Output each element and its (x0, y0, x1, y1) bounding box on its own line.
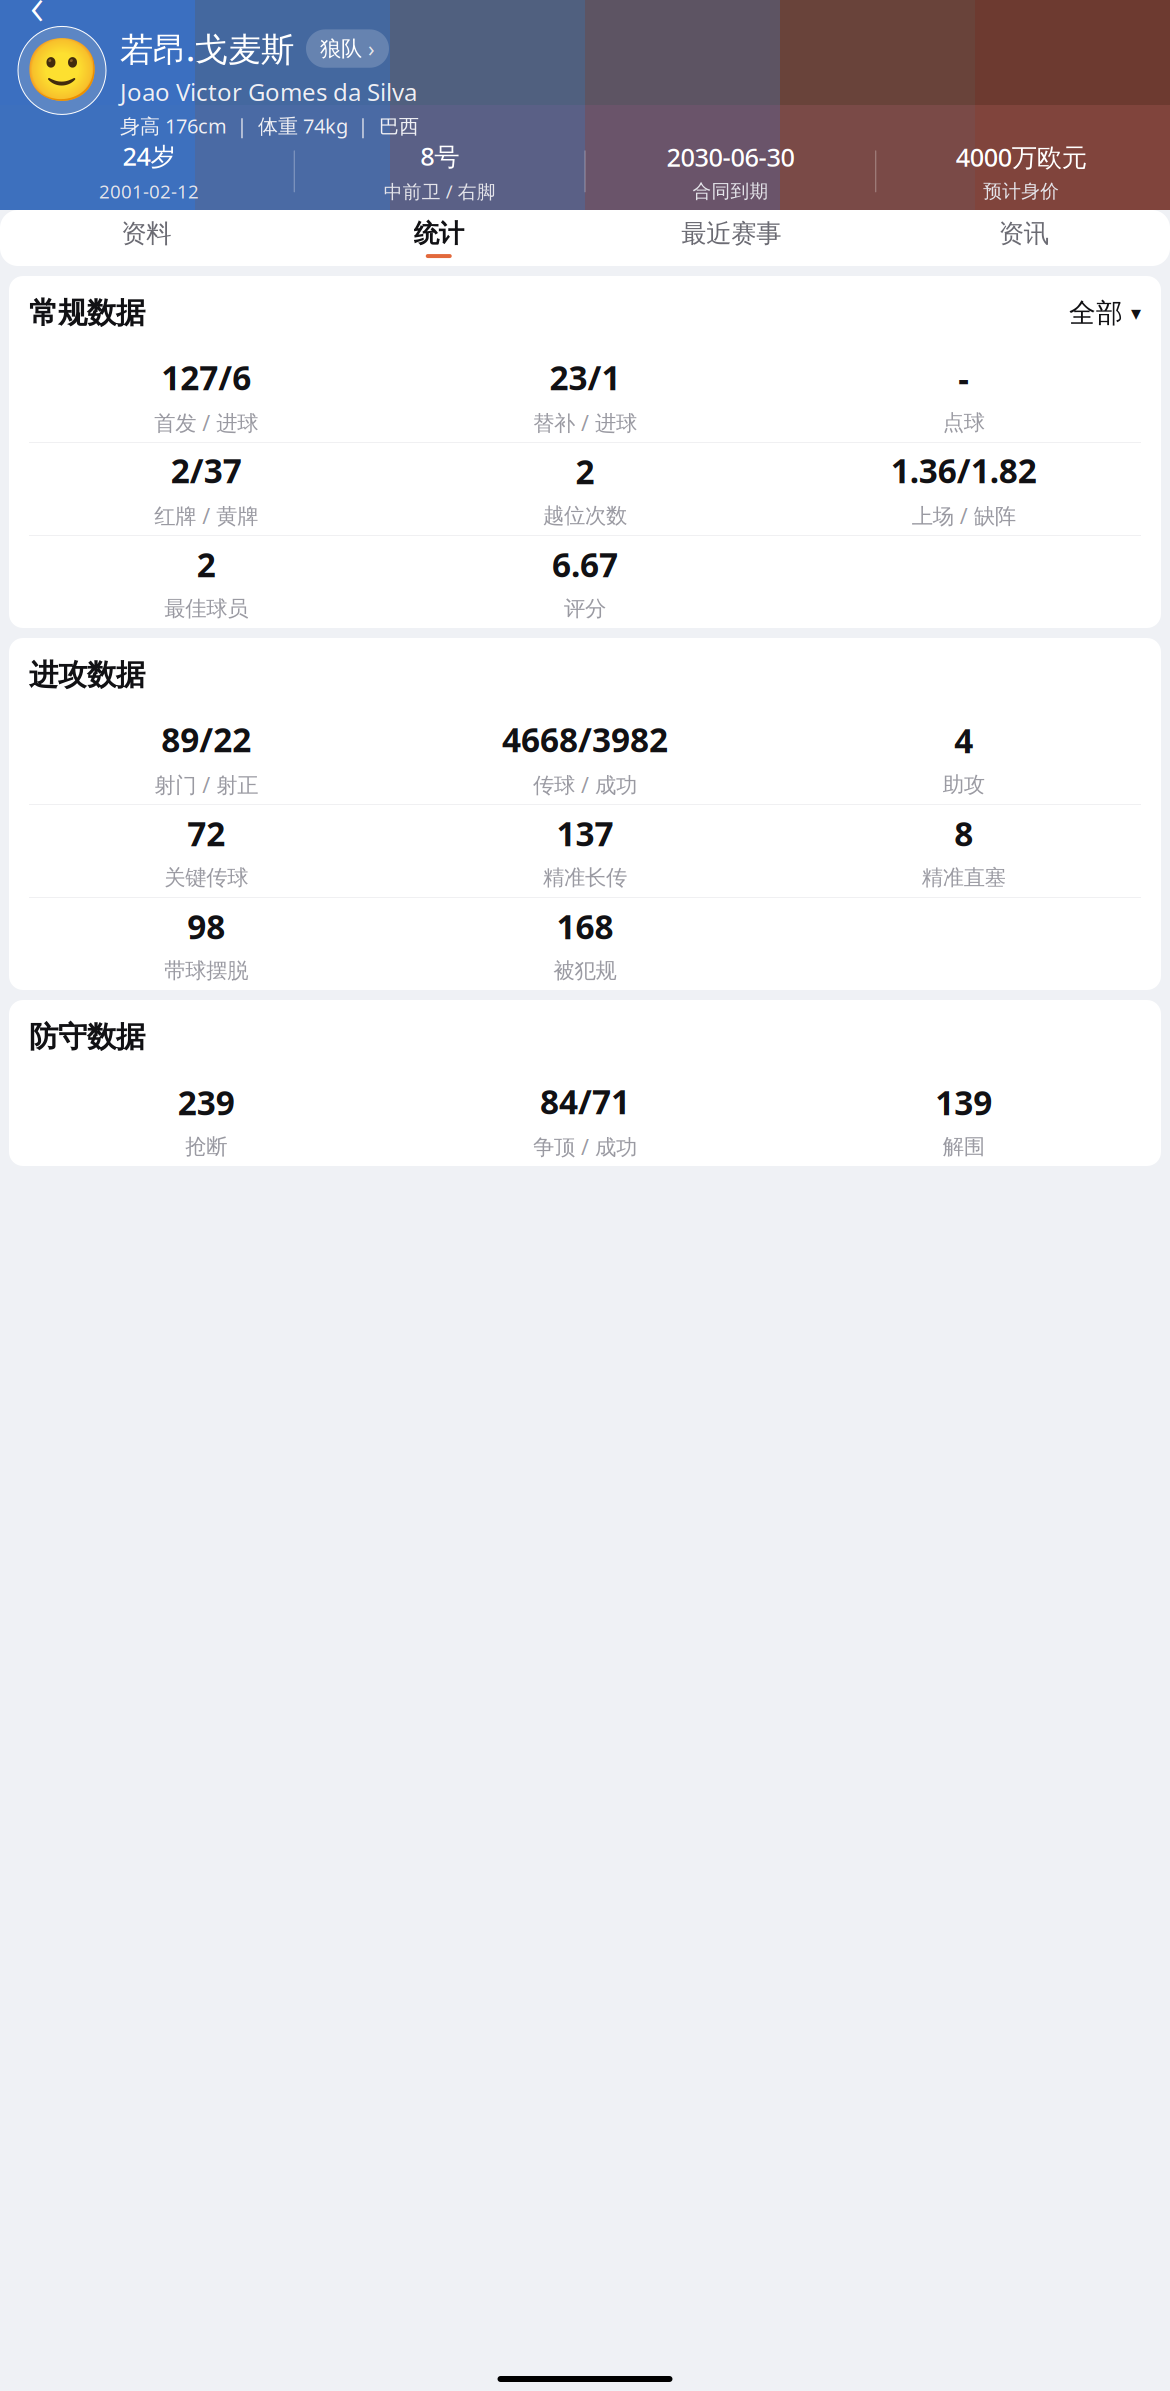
staticText: 统计 (414, 218, 464, 249)
staticText: 1.36/1.82 (891, 448, 1037, 492)
staticText: - (958, 356, 969, 401)
staticText: 98 (187, 904, 225, 949)
staticText: 最近赛事 (681, 218, 781, 249)
staticText: 中前卫 / 右脚 (384, 179, 496, 204)
staticText: 带球摆脱 (164, 957, 248, 984)
staticText: 点球 (943, 409, 985, 436)
staticText: 239 (178, 1080, 235, 1125)
staticText: 127/6 (161, 355, 251, 399)
staticText: 2001-02-12 (99, 179, 199, 204)
staticText: 全部 (1069, 297, 1123, 329)
staticText: 4668/3982 (502, 717, 668, 761)
staticText: 84/71 (540, 1079, 630, 1123)
button[interactable]: 统计 (292, 210, 585, 266)
staticText: 越位次数 (543, 502, 627, 529)
staticText: 身高 176cm ｜ 体重 74kg ｜ 巴西 (120, 113, 419, 139)
staticText: 射门 / 射正 (154, 770, 258, 799)
button[interactable]: 资料 (0, 210, 292, 266)
staticText: 139 (935, 1080, 992, 1125)
staticText: 最佳球员 (164, 595, 248, 622)
staticText: 评分 (564, 595, 606, 622)
staticText: 8号 (420, 139, 459, 173)
staticText: 解围 (943, 1133, 985, 1160)
staticText: 关键传球 (164, 864, 248, 891)
staticText: 替补 / 进球 (533, 408, 637, 437)
staticText: 防守数据 (29, 1019, 145, 1055)
button[interactable]: 最近赛事 (585, 210, 877, 266)
staticText: 狼队 (320, 35, 362, 62)
staticText: 6.67 (552, 542, 618, 587)
staticText: 精准直塞 (922, 864, 1006, 891)
staticText: 4000万欧元 (956, 140, 1087, 174)
button[interactable]: 全部 (1069, 297, 1141, 329)
staticText: 精准长传 (543, 864, 627, 891)
staticText: › (368, 34, 375, 63)
staticText: 合同到期 (692, 180, 768, 203)
staticText: 2 (197, 542, 216, 587)
staticText: 2 (575, 449, 594, 494)
button[interactable]: 狼队 (306, 29, 389, 68)
staticText: 72 (187, 811, 225, 856)
staticText: ‹ (30, 0, 44, 40)
staticText: 2/37 (171, 448, 242, 492)
staticText: 抢断 (185, 1133, 227, 1160)
staticText: ▾ (1131, 302, 1141, 324)
staticText: 传球 / 成功 (533, 770, 637, 799)
button[interactable]: 资讯 (877, 210, 1170, 266)
staticText: 上场 / 缺阵 (912, 501, 1016, 530)
staticText: 争顶 / 成功 (533, 1132, 637, 1161)
staticText: 8 (954, 811, 973, 856)
staticText: 24岁 (122, 139, 175, 173)
staticText: 资料 (121, 218, 171, 249)
staticText: 若昂.戈麦斯 (120, 26, 294, 71)
staticText: 137 (556, 811, 613, 856)
staticText: 168 (556, 904, 613, 949)
staticText: 4 (954, 718, 973, 763)
staticText: 89/22 (161, 717, 251, 761)
button[interactable]: Back (0, 0, 60, 24)
staticText: 2030-06-30 (666, 140, 794, 174)
staticText: 常规数据 (29, 295, 145, 331)
staticText: Joao Victor Gomes da Silva (120, 76, 417, 108)
staticText: 资讯 (999, 218, 1049, 249)
staticText: 红牌 / 黄牌 (154, 501, 258, 530)
staticText: 进攻数据 (29, 657, 145, 693)
staticText: 首发 / 进球 (154, 408, 258, 437)
staticText: 🙂 (24, 35, 100, 105)
staticText: 被犯规 (553, 957, 616, 984)
staticText: 预计身价 (983, 180, 1059, 203)
staticText: 助攻 (943, 771, 985, 798)
staticText: 23/1 (549, 355, 620, 399)
